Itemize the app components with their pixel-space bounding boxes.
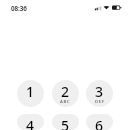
other: Signal, Wi-Fi and battery status — [94, 5, 124, 11]
staticText: DEF — [95, 98, 105, 104]
staticText: 3 — [95, 82, 104, 101]
staticText: ABC — [60, 98, 71, 104]
button[interactable]: 1 — [17, 80, 44, 107]
staticText: 6 — [95, 116, 104, 130]
staticText: 5 — [61, 116, 70, 130]
staticText: 08:36 — [11, 4, 27, 13]
staticText: 2 — [61, 82, 70, 101]
staticText: 1 — [26, 82, 35, 101]
button[interactable]: 4 — [17, 114, 44, 130]
button[interactable]: 2 — [52, 80, 79, 107]
button[interactable]: 5 — [52, 114, 79, 130]
button[interactable]: 3 — [86, 80, 113, 107]
staticText: 4 — [26, 116, 35, 130]
button[interactable]: 6 — [86, 114, 113, 130]
